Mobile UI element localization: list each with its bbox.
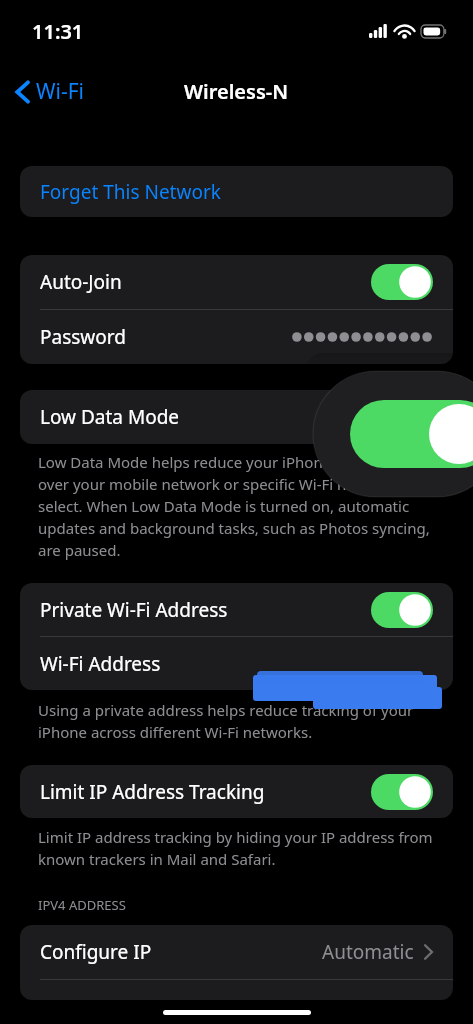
staticText: Automatic: [322, 939, 414, 965]
button[interactable]: Low Data Mode: [20, 390, 453, 444]
staticText: Wi-Fi: [36, 77, 85, 106]
staticText: Private Wi-Fi Address: [40, 597, 228, 623]
staticText: Using a private address helps reduce tra…: [38, 700, 435, 743]
staticText: Low Data Mode helps reduce your iPhone d…: [38, 452, 435, 561]
staticText: IPV4 ADDRESS: [38, 896, 126, 914]
staticText: Auto-Join: [40, 269, 122, 295]
button[interactable]: Toggle on: [371, 774, 433, 810]
staticText: Wi-Fi Address: [40, 651, 161, 677]
staticText: Password: [40, 324, 126, 350]
staticText: Wireless-N: [184, 78, 289, 105]
staticText: Forget This Network: [40, 179, 221, 205]
button[interactable]: Wi-Fi: [10, 71, 91, 112]
button[interactable]: Configure IP: [20, 925, 453, 979]
button[interactable]: Password: [20, 310, 453, 364]
staticText: Configure IP: [40, 939, 152, 965]
button[interactable]: Toggle on: [371, 592, 433, 628]
staticText: 11:31: [32, 18, 84, 45]
button[interactable]: Forget This Network: [20, 166, 453, 217]
staticText: Limit IP address tracking by hiding your…: [38, 827, 435, 870]
button[interactable]: Toggle on: [371, 264, 433, 300]
button[interactable]: Wi-Fi Address: [20, 637, 453, 690]
button[interactable]: Limit IP Address Tracking: [20, 765, 453, 818]
staticText: Limit IP Address Tracking: [40, 779, 265, 805]
button[interactable]: Auto-Join: [20, 255, 453, 309]
button[interactable]: Toggle on: [371, 399, 433, 435]
button[interactable]: Private Wi-Fi Address: [20, 583, 453, 636]
staticText: Low Data Mode: [40, 404, 180, 430]
